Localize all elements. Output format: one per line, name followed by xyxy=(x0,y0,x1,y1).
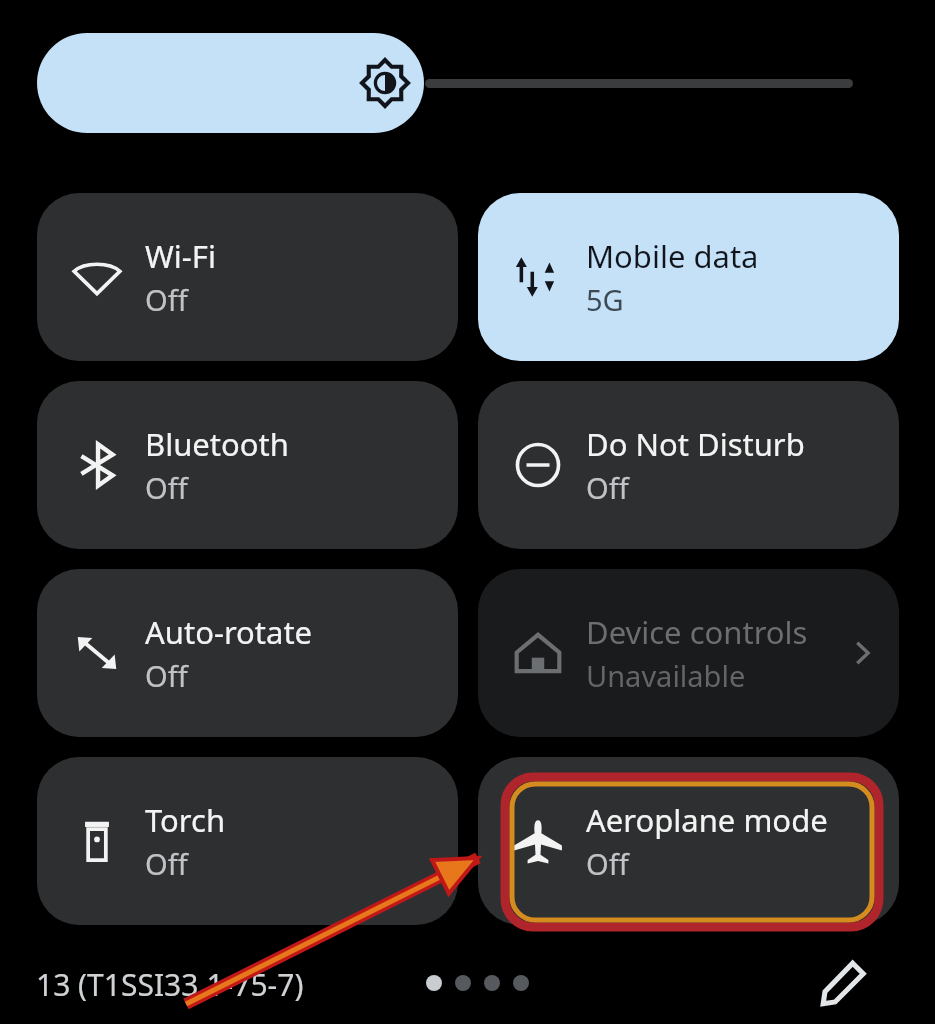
staticText: Unavailable xyxy=(586,656,746,695)
staticText: Bluetooth xyxy=(145,423,289,465)
staticText: Torch xyxy=(145,799,226,841)
staticText: Off xyxy=(586,468,629,507)
staticText: Off xyxy=(145,844,188,883)
staticText: Auto-rotate xyxy=(145,611,313,653)
staticText: Aeroplane mode xyxy=(586,799,828,841)
button[interactable]: Device controls xyxy=(478,569,899,737)
button[interactable]: Wi-Fi xyxy=(37,193,458,361)
button[interactable]: Torch xyxy=(37,757,458,925)
staticText: Off xyxy=(145,656,188,695)
button[interactable]: Aeroplane mode xyxy=(478,757,899,925)
staticText: Off xyxy=(586,844,629,883)
staticText: Off xyxy=(145,280,188,319)
button[interactable]: Bluetooth xyxy=(37,381,458,549)
staticText: Mobile data xyxy=(586,235,759,277)
staticText: 5G xyxy=(586,280,624,319)
staticText: Wi-Fi xyxy=(145,235,216,277)
staticText: Off xyxy=(145,468,188,507)
button[interactable]: Edit xyxy=(810,950,876,1016)
button[interactable]: Auto-rotate xyxy=(37,569,458,737)
staticText: Device controls xyxy=(586,611,808,653)
button[interactable]: 13 (T1SSI33.1-75-7) xyxy=(28,958,312,1011)
staticText: 13 (T1SSI33.1-75-7) xyxy=(36,964,304,1005)
button[interactable]: Brightness xyxy=(37,33,424,133)
staticText: Do Not Disturb xyxy=(586,423,805,465)
button[interactable]: Do Not Disturb xyxy=(478,381,899,549)
button[interactable]: Mobile data xyxy=(478,193,899,361)
